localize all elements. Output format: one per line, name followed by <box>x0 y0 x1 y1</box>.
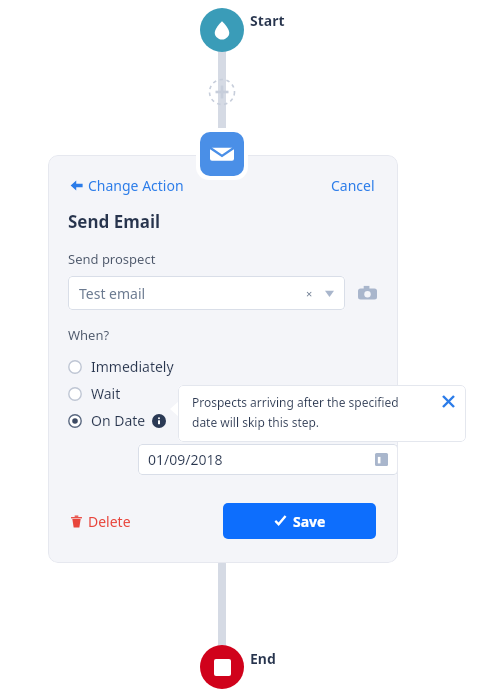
button[interactable]: On Date <box>48 407 398 434</box>
staticText: Cancel <box>331 176 375 195</box>
button[interactable]: Delete <box>68 508 133 535</box>
staticText: When? <box>68 326 110 344</box>
button[interactable]: Save <box>223 503 376 539</box>
button[interactable]: Wait <box>48 380 398 407</box>
staticText: Send Email <box>68 210 161 233</box>
button[interactable]: Preview email <box>355 280 380 306</box>
button[interactable]: Change Action <box>68 173 186 198</box>
button[interactable]: Immediately <box>48 353 398 380</box>
staticText: Send prospect <box>68 250 156 268</box>
staticText: End <box>250 649 276 668</box>
button[interactable]: Test email <box>68 276 345 310</box>
staticText: Start <box>250 11 285 30</box>
staticText: On Date <box>91 411 146 430</box>
staticText: Save <box>293 512 326 531</box>
button[interactable]: Send Email action <box>200 132 244 176</box>
button[interactable]: 01/09/2018 <box>138 444 398 475</box>
button[interactable]: Add step <box>208 78 236 106</box>
staticText: Immediately <box>91 357 174 376</box>
staticText: Test email <box>79 284 146 303</box>
button[interactable]: Cancel <box>328 173 378 198</box>
staticText: Delete <box>88 512 131 531</box>
staticText: 01/09/2018 <box>148 450 223 469</box>
staticText: × <box>306 286 313 301</box>
staticText: Change Action <box>88 176 184 195</box>
staticText: Wait <box>91 384 121 403</box>
button[interactable]: Start <box>200 8 244 52</box>
button[interactable]: Close tooltip <box>438 391 458 411</box>
button[interactable]: More info <box>152 414 166 428</box>
staticText: Prospects arriving after the specified d… <box>192 394 426 430</box>
button[interactable]: End <box>200 645 244 689</box>
